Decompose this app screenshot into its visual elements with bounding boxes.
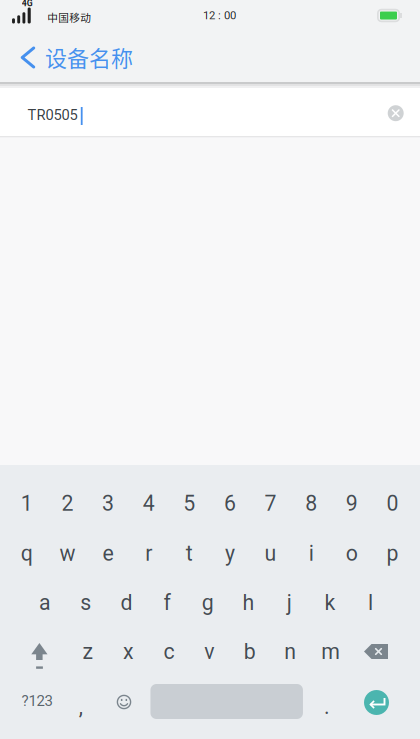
staticText: s bbox=[80, 590, 91, 615]
staticText: TR0505 bbox=[28, 106, 78, 124]
button[interactable]: j bbox=[269, 580, 309, 626]
staticText: e bbox=[102, 541, 113, 566]
button[interactable]: o bbox=[332, 530, 372, 576]
button[interactable]: w bbox=[47, 530, 87, 576]
button[interactable]: a bbox=[25, 580, 65, 626]
staticText: 9 bbox=[346, 491, 358, 516]
button[interactable]: n bbox=[270, 629, 310, 675]
button[interactable]: Symbols bbox=[9, 678, 65, 724]
staticText: , bbox=[79, 694, 83, 719]
staticText: i bbox=[309, 541, 314, 566]
staticText: 0 bbox=[386, 491, 398, 516]
button[interactable]: i bbox=[291, 530, 331, 576]
button[interactable]: c bbox=[149, 629, 189, 675]
button[interactable]: b bbox=[230, 629, 270, 675]
staticText: b bbox=[244, 639, 256, 664]
button[interactable]: 8 bbox=[291, 480, 331, 526]
staticText: 中国移动 bbox=[47, 9, 91, 25]
staticText: z bbox=[82, 639, 93, 664]
staticText: 12 : 00 bbox=[203, 9, 236, 22]
button[interactable]: , bbox=[61, 684, 101, 730]
button[interactable]: r bbox=[129, 530, 169, 576]
button[interactable]: d bbox=[106, 580, 146, 626]
staticText: n bbox=[284, 639, 296, 664]
staticText: 设备名称 bbox=[45, 41, 133, 73]
button[interactable]: 0 bbox=[372, 480, 412, 526]
button[interactable]: y bbox=[210, 530, 250, 576]
button[interactable]: 3 bbox=[88, 480, 128, 526]
button[interactable]: Clear text bbox=[382, 99, 410, 127]
staticText: o bbox=[346, 541, 358, 566]
button[interactable]: x bbox=[108, 629, 148, 675]
staticText: . bbox=[324, 694, 330, 719]
button[interactable]: Emoji bbox=[102, 679, 146, 725]
staticText: c bbox=[163, 639, 174, 664]
staticText: d bbox=[120, 590, 132, 615]
button[interactable]: p bbox=[372, 530, 412, 576]
staticText: w bbox=[59, 541, 75, 566]
staticText: 1 bbox=[21, 491, 33, 516]
staticText: h bbox=[242, 590, 254, 615]
staticText: 5 bbox=[183, 491, 195, 516]
staticText: k bbox=[324, 590, 335, 615]
staticText: g bbox=[202, 590, 214, 615]
staticText: p bbox=[386, 541, 398, 566]
staticText: t bbox=[186, 541, 193, 566]
button[interactable]: l bbox=[351, 580, 391, 626]
staticText: 7 bbox=[264, 491, 276, 516]
staticText: v bbox=[204, 639, 214, 664]
staticText: a bbox=[39, 590, 51, 615]
button[interactable]: 4 bbox=[129, 480, 169, 526]
button[interactable]: 7 bbox=[250, 480, 290, 526]
button[interactable]: s bbox=[66, 580, 106, 626]
button[interactable]: e bbox=[88, 530, 128, 576]
button[interactable]: 2 bbox=[47, 480, 87, 526]
staticText: y bbox=[225, 541, 235, 566]
button[interactable]: f bbox=[147, 580, 187, 626]
staticText: 4 bbox=[143, 491, 155, 516]
button[interactable]: Enter bbox=[354, 679, 398, 725]
staticText: 6 bbox=[224, 491, 236, 516]
staticText: 8 bbox=[305, 491, 317, 516]
button[interactable]: z bbox=[68, 629, 108, 675]
button[interactable]: h bbox=[228, 580, 268, 626]
button[interactable]: 9 bbox=[332, 480, 372, 526]
button[interactable]: . bbox=[307, 684, 347, 730]
staticText: 3 bbox=[102, 491, 114, 516]
button[interactable]: Shift bbox=[13, 629, 65, 675]
button[interactable]: u bbox=[250, 530, 290, 576]
staticText: x bbox=[123, 639, 134, 664]
staticText: l bbox=[368, 590, 373, 615]
button[interactable]: v bbox=[189, 629, 229, 675]
button[interactable]: 1 bbox=[7, 480, 47, 526]
staticText: q bbox=[21, 541, 33, 566]
staticText: r bbox=[145, 541, 152, 566]
staticText: ?123 bbox=[21, 692, 52, 710]
staticText: 4G bbox=[22, 0, 33, 8]
button[interactable]: 6 bbox=[210, 480, 250, 526]
button[interactable]: t bbox=[169, 530, 209, 576]
staticText: m bbox=[321, 639, 340, 664]
button[interactable]: q bbox=[7, 530, 47, 576]
button[interactable]: m bbox=[311, 629, 351, 675]
button[interactable]: 5 bbox=[169, 480, 209, 526]
staticText: f bbox=[164, 590, 171, 615]
staticText: u bbox=[264, 541, 276, 566]
staticText: 2 bbox=[61, 491, 73, 516]
button[interactable]: Back bbox=[5, 35, 49, 79]
button[interactable]: Backspace bbox=[351, 629, 403, 675]
staticText: j bbox=[287, 590, 292, 615]
button[interactable]: k bbox=[310, 580, 350, 626]
button[interactable]: g bbox=[188, 580, 228, 626]
